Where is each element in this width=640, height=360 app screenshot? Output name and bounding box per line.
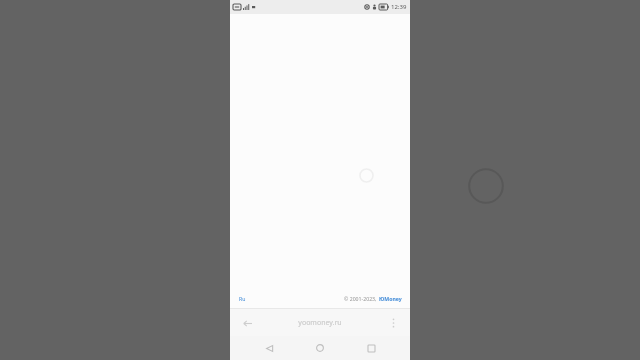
button[interactable]: © 2001-2023, (343, 293, 403, 304)
button[interactable]: Home (308, 336, 332, 360)
staticText: Ru (239, 295, 246, 302)
button[interactable]: More options (385, 315, 401, 331)
button[interactable]: Back (239, 315, 255, 331)
staticText: yoomoney.ru (298, 318, 342, 328)
button[interactable]: yoomoney.ru (292, 315, 348, 331)
staticText: 12:39 (391, 3, 407, 11)
button[interactable]: Back (257, 336, 281, 360)
button[interactable]: Recent apps (359, 336, 383, 360)
staticText: ЮMoney (379, 295, 402, 302)
staticText: © 2001-2023, (344, 295, 377, 302)
button[interactable]: Ru (237, 293, 248, 304)
